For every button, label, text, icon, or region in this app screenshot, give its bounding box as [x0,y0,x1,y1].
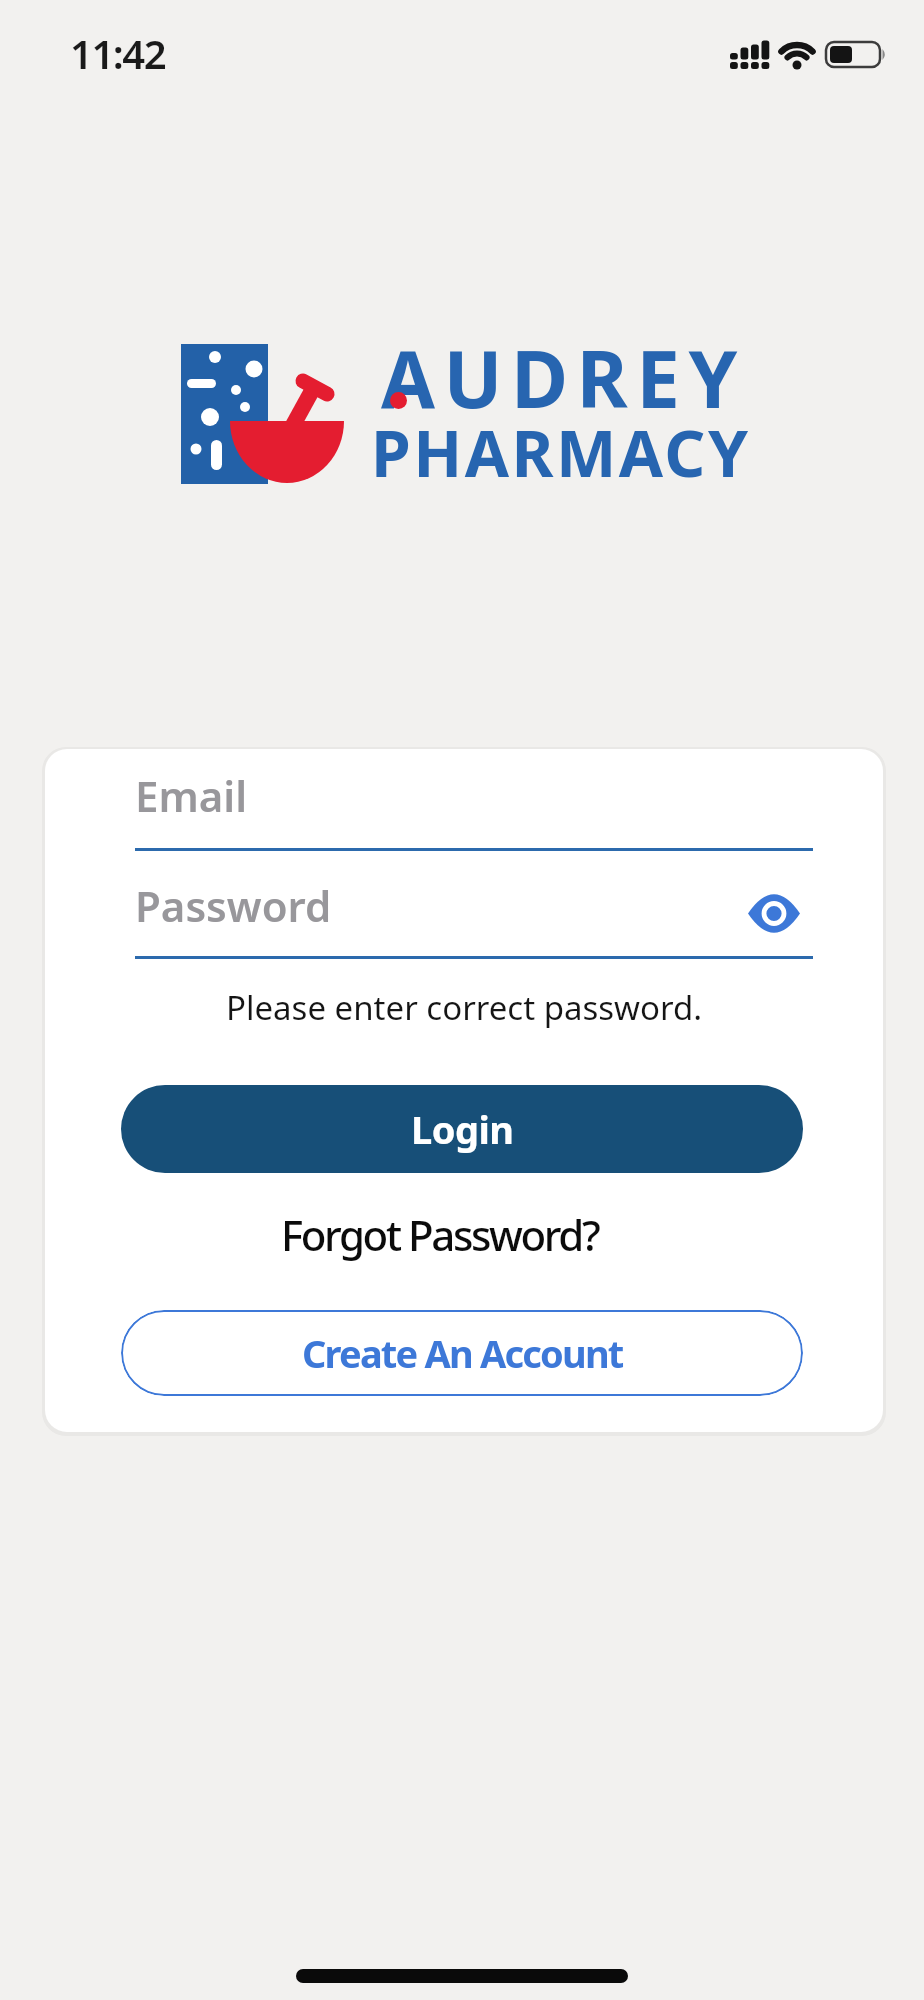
staticText: Forgot Password? [281,1206,599,1263]
staticText: PHARMACY [371,409,751,496]
staticText: AUDREY [381,325,746,431]
button[interactable]: Create An Account [121,1310,803,1396]
staticText: Please enter correct password. [226,985,703,1030]
staticText: Create An Account [302,1327,623,1379]
staticText: Email [135,767,248,824]
staticText: Login [411,1103,514,1155]
staticText: Password [135,877,332,934]
button[interactable]: Forgot Password? [45,1206,859,1263]
staticText: 11:42 [70,26,166,80]
button[interactable]: Login [121,1085,803,1173]
button[interactable] [748,895,800,932]
